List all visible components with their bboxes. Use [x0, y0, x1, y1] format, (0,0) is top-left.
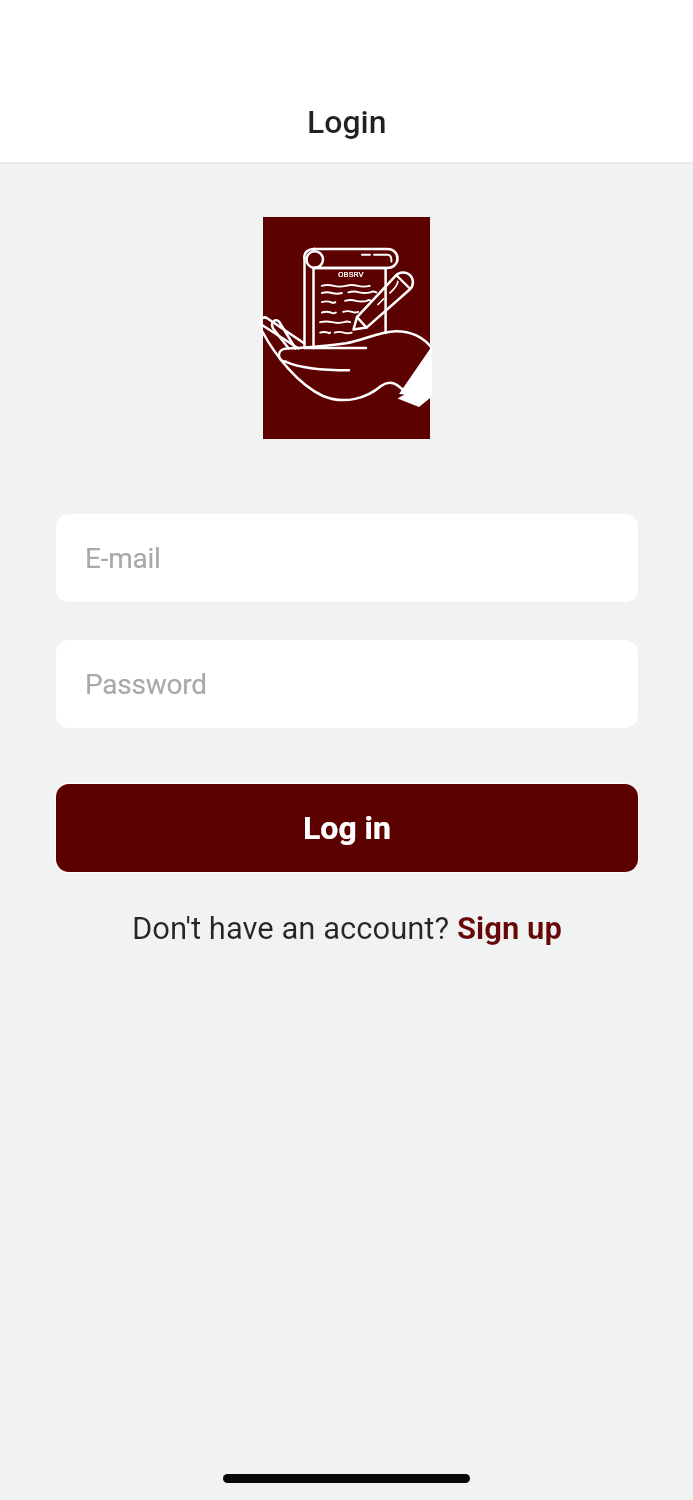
button[interactable]: Password	[56, 640, 638, 728]
staticText: OBSRV	[338, 270, 364, 279]
button[interactable]: E-mail	[56, 514, 638, 602]
staticText: Password	[85, 668, 207, 701]
staticText: Login	[307, 103, 387, 141]
other: OBSRV logo	[263, 217, 430, 439]
staticText: Log in	[303, 809, 392, 847]
button[interactable]: Log in	[55, 783, 639, 873]
staticText: E-mail	[85, 542, 161, 575]
staticText: Don't have an account?	[132, 910, 457, 946]
staticText: Sign up	[457, 910, 562, 946]
button[interactable]: Sign up	[457, 910, 562, 946]
